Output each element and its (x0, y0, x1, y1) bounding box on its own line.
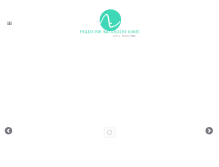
staticText: DIPL. BIOCHEM. (113, 34, 136, 37)
button[interactable]: Back (5, 127, 12, 134)
button[interactable]: Forward (205, 127, 213, 134)
button[interactable]: Reload (104, 127, 115, 138)
button[interactable]: Menu (4, 18, 15, 29)
staticText: PRAXIS FÜR NATÜRLICHE KUNST (80, 30, 139, 34)
